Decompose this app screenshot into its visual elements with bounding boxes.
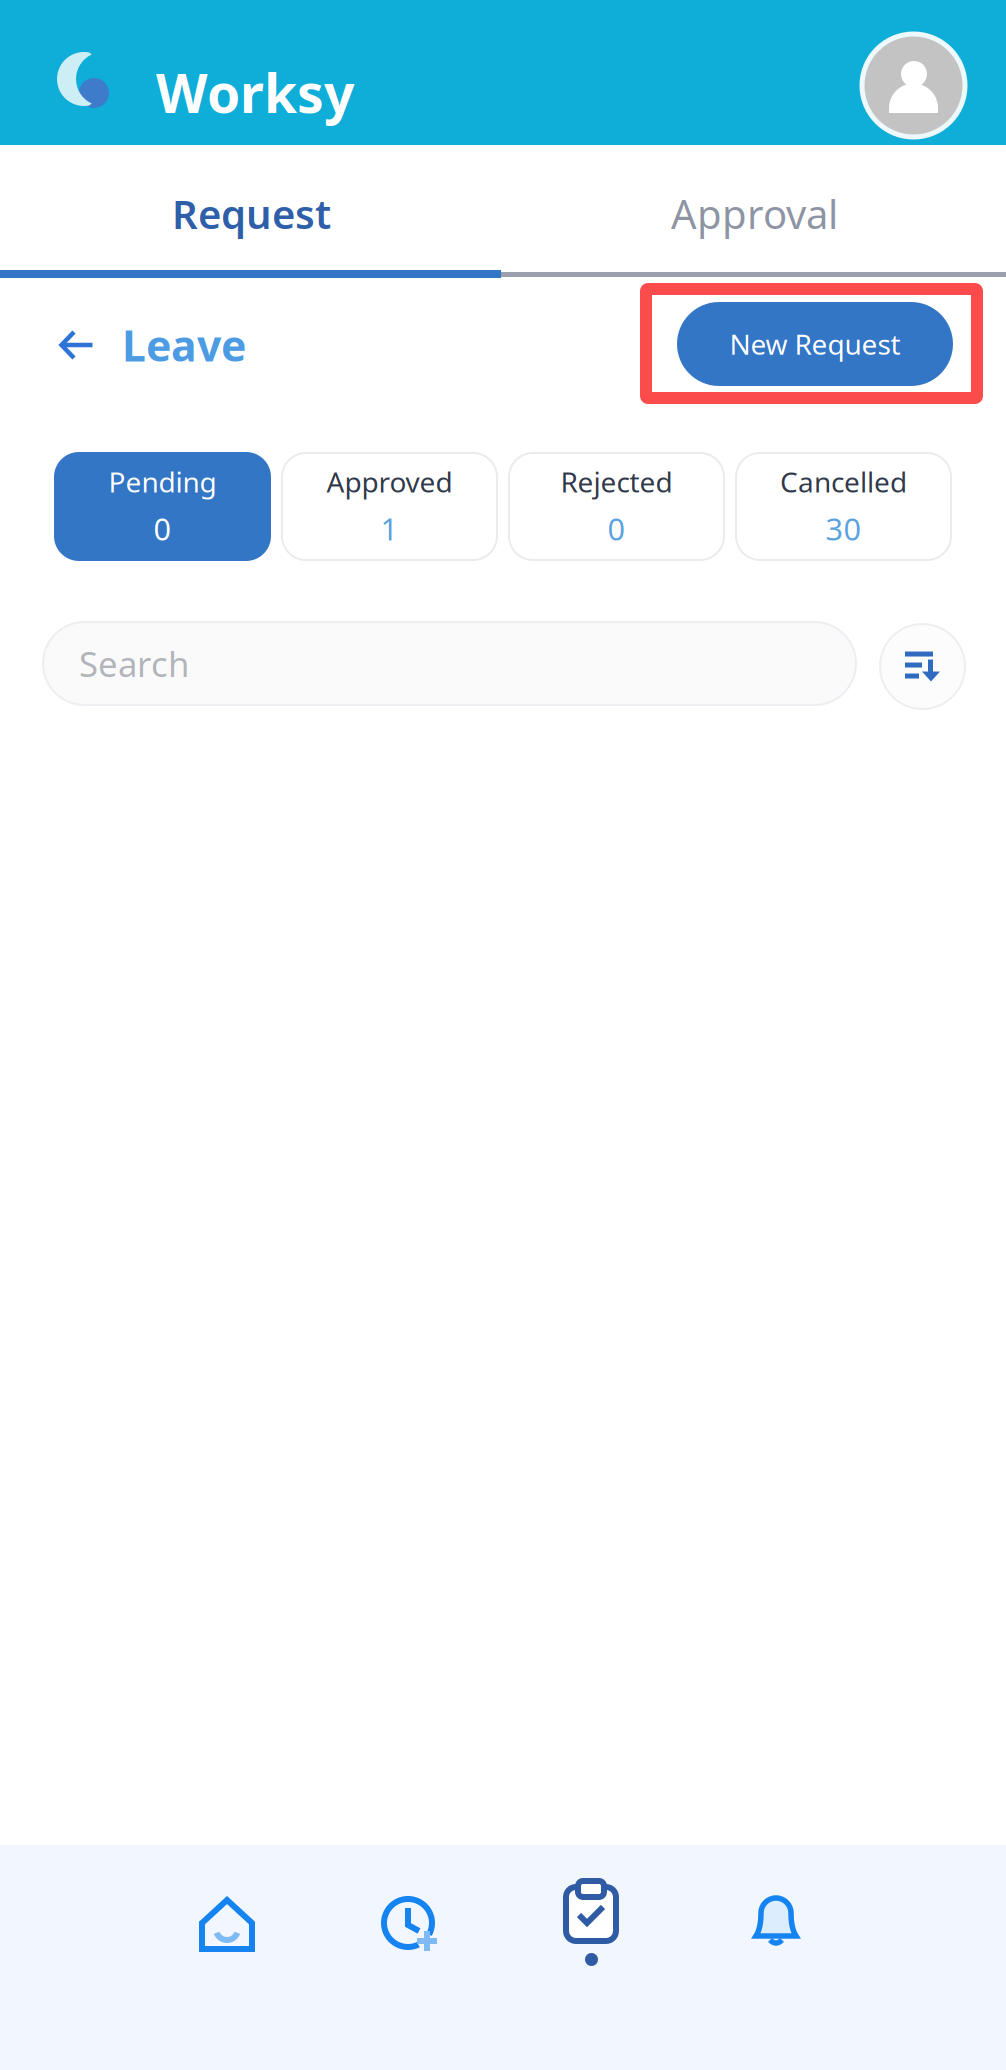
button[interactable]: Approved (282, 453, 497, 560)
button[interactable]: Request (0, 151, 503, 276)
button[interactable]: Time tracking (382, 1896, 440, 1954)
button[interactable]: Notifications (750, 1891, 806, 1947)
staticText: Pending (108, 463, 216, 500)
button[interactable]: Search (43, 622, 856, 705)
staticText: 30 (825, 508, 861, 549)
staticText: Search (79, 640, 189, 686)
staticText: Leave (122, 317, 246, 373)
button[interactable]: Sort (880, 624, 965, 709)
staticText: 0 (153, 508, 171, 549)
staticText: Rejected (560, 463, 672, 500)
staticText: Cancelled (780, 463, 907, 500)
staticText: Worksy (156, 57, 354, 128)
button[interactable]: Cancelled (736, 453, 951, 560)
staticText: Approval (671, 187, 838, 240)
staticText: Request (172, 187, 331, 240)
staticText: 0 (607, 508, 625, 549)
button[interactable]: Approval (503, 151, 1006, 276)
staticText: Approved (326, 463, 452, 500)
button[interactable]: New Request (677, 302, 953, 386)
button[interactable]: Requests (562, 1881, 620, 1971)
button[interactable]: Pending (55, 453, 270, 560)
staticText: New Request (729, 325, 900, 363)
button[interactable]: Rejected (509, 453, 724, 560)
staticText: 1 (380, 508, 398, 549)
button[interactable]: Home (199, 1896, 255, 1952)
button[interactable]: Profile (862, 34, 965, 137)
button[interactable]: Leave (0, 293, 280, 397)
